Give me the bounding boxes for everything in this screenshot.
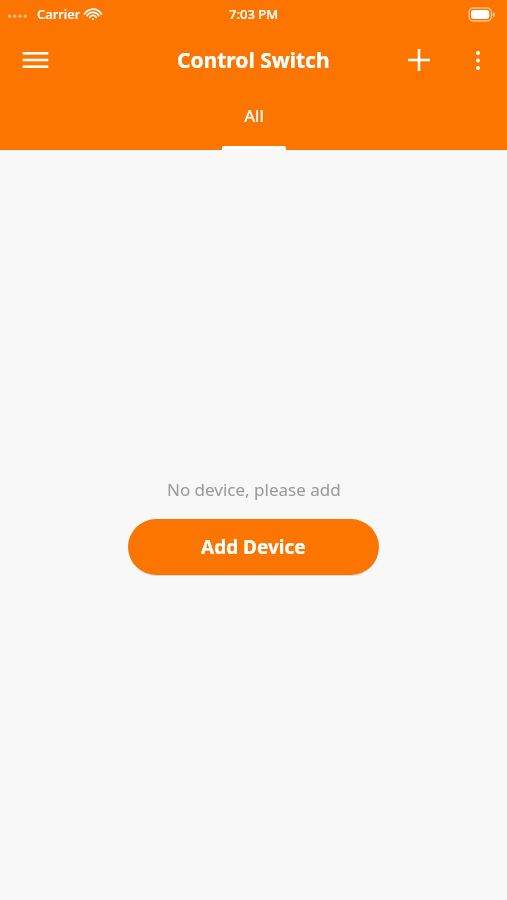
staticText: All xyxy=(244,104,264,127)
staticText: Carrier xyxy=(37,5,81,23)
staticText: 7:03 PM xyxy=(229,5,279,23)
staticText: Control Switch xyxy=(177,46,330,75)
button[interactable]: Add xyxy=(395,36,443,84)
button[interactable]: More options xyxy=(454,36,502,84)
button[interactable]: Open navigation menu xyxy=(11,36,59,84)
staticText: No device, please add xyxy=(167,478,341,501)
button[interactable]: Add Device xyxy=(128,519,379,575)
button[interactable]: All xyxy=(209,92,299,150)
staticText: Add Device xyxy=(201,534,306,560)
